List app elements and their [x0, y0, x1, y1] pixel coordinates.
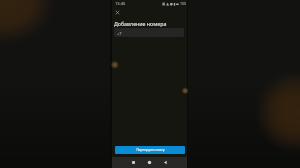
staticText: Подтвердить номер [136, 148, 165, 152]
staticText: 13:46 [115, 1, 126, 6]
staticText: ▣ ▲ ● ▮▬ 100 [162, 1, 186, 6]
button[interactable]: Close [114, 9, 121, 16]
staticText: Добавление номера [114, 20, 167, 27]
staticText: +7 [117, 31, 122, 36]
button[interactable]: +7 [114, 28, 184, 37]
button[interactable]: Recent apps [131, 160, 136, 165]
button[interactable]: Back [163, 160, 168, 165]
button[interactable]: Подтвердить номер [115, 146, 185, 154]
button[interactable]: Home [147, 160, 152, 165]
